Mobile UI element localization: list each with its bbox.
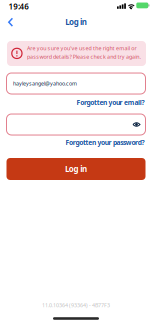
staticText: 19:46 <box>8 1 29 12</box>
staticText: Log in <box>65 16 87 27</box>
staticText: Forgotten your password? <box>65 138 144 147</box>
staticText: Are you sure you've used the right email… <box>27 45 136 52</box>
staticText: Log in <box>65 164 87 174</box>
staticText: 11.0.10364 (93364) - 4B77F3 <box>42 302 110 309</box>
staticText: Forgotten your email? <box>76 98 144 107</box>
staticText: password details? Please check and try a… <box>27 53 140 60</box>
staticText: hayleysangel@yahoo.com <box>13 80 77 87</box>
